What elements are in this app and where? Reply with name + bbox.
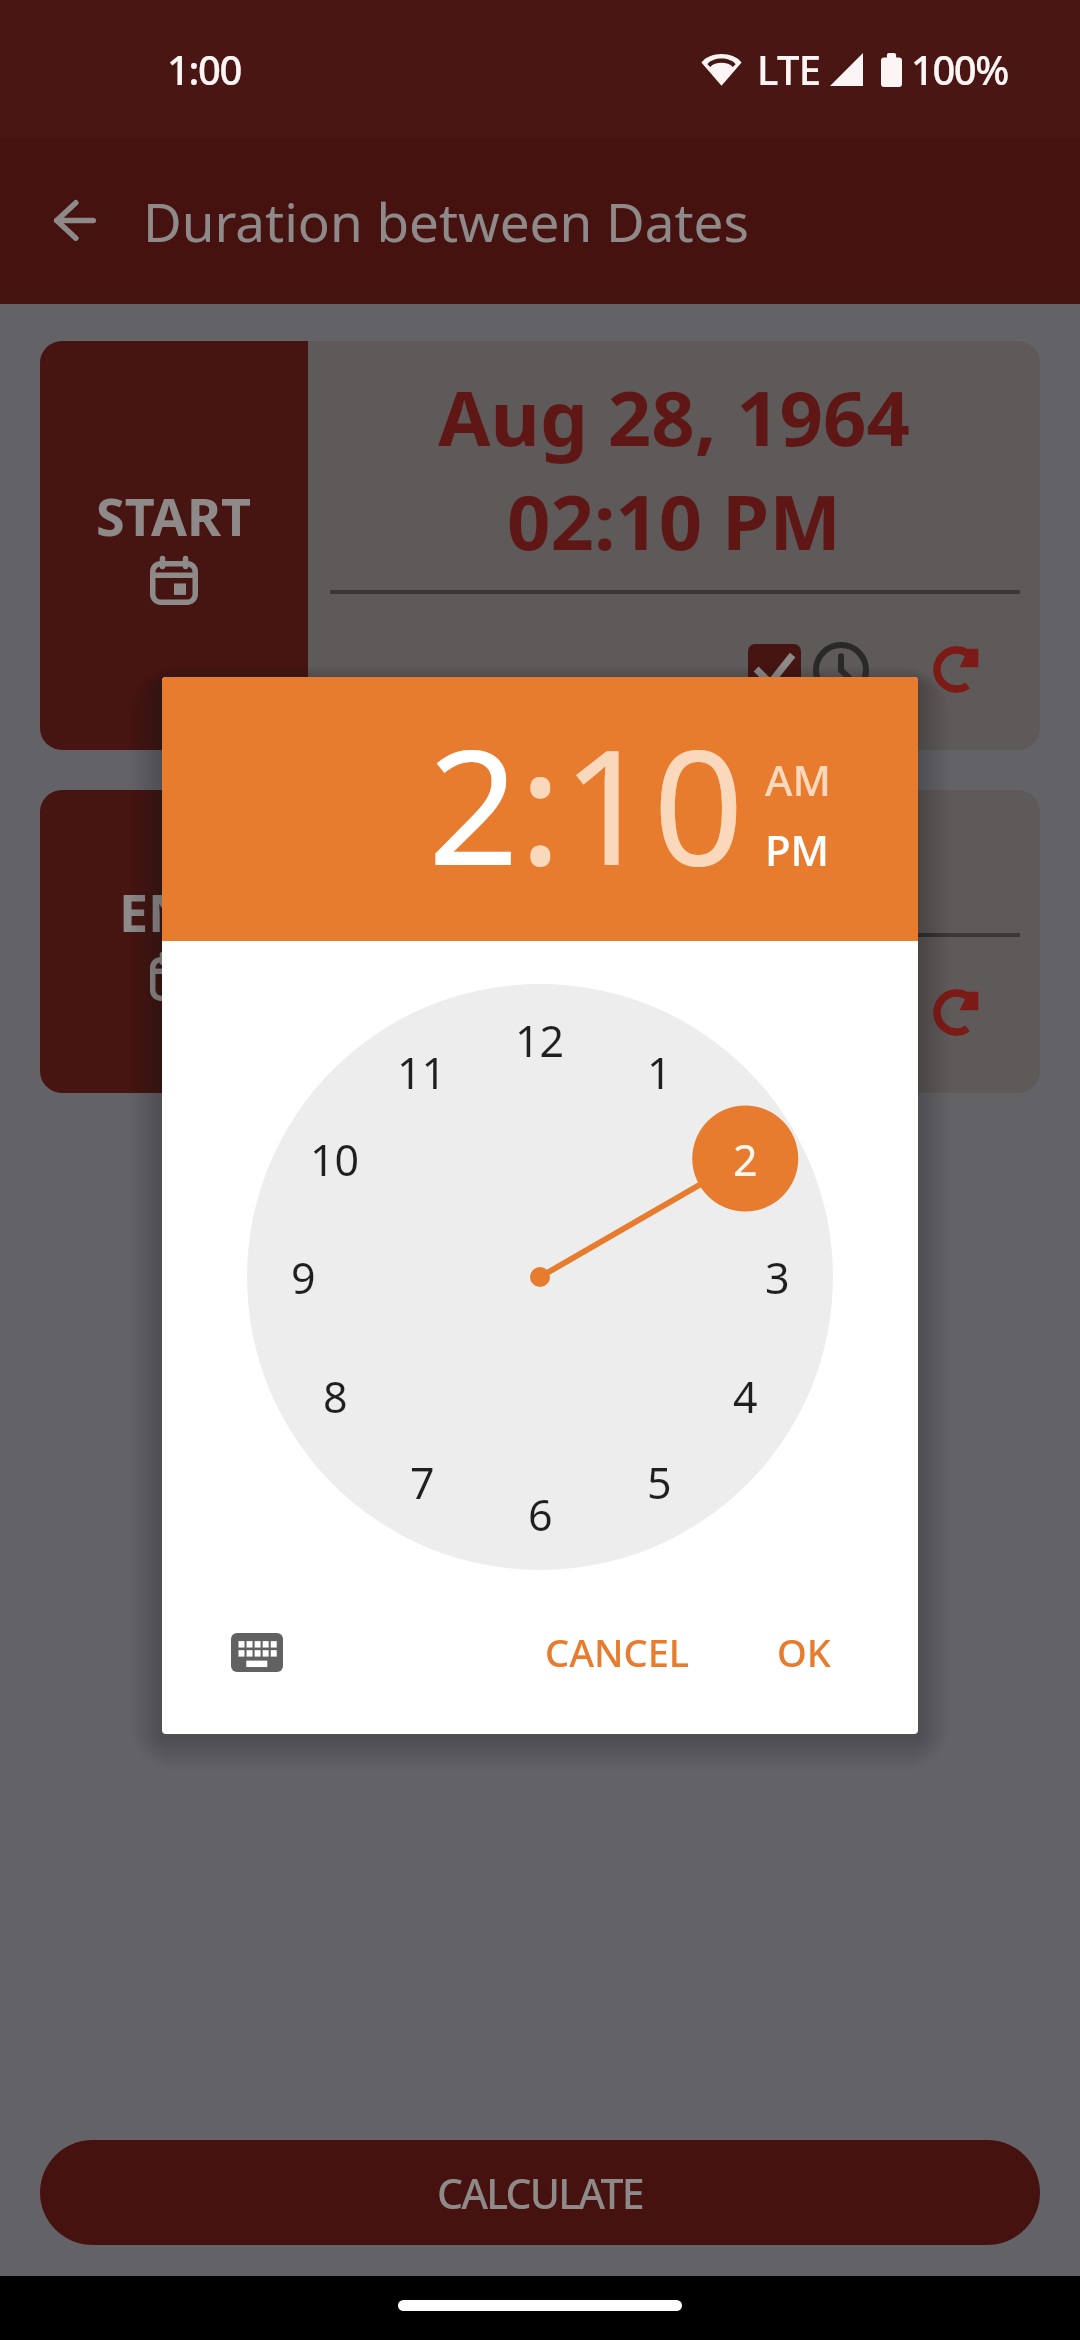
staticText: Aug 28, 1964 [308,365,1040,469]
button[interactable]: Reset [931,982,987,1038]
button[interactable]: 2 [733,1130,758,1189]
staticText: 1:00 [167,42,241,96]
staticText: Duration between Dates [143,185,749,257]
button[interactable]: 10 [310,1130,360,1189]
button[interactable]: END [40,790,308,1093]
button[interactable]: CALCULATE [40,2140,1040,2245]
staticText: PM [765,821,830,878]
button[interactable]: START [40,341,308,750]
button[interactable]: 8 [323,1367,348,1426]
button[interactable]: Time [813,642,869,698]
staticText: END [119,876,229,947]
button[interactable]: Toggle time [748,644,801,697]
staticText: LTE [757,42,821,96]
staticText: START [96,480,252,551]
button[interactable]: 12 [515,1011,565,1070]
staticText: 100% [911,42,1008,96]
button[interactable]: 4 [733,1367,758,1426]
staticText: CALCULATE [437,2165,643,2221]
button[interactable]: 7 [410,1453,435,1512]
staticText: : [519,695,562,912]
button[interactable]: 6 [528,1485,553,1544]
staticText: 02:10 PM [308,918,1040,1022]
button[interactable]: 10 [562,695,744,912]
button[interactable]: Switch to keyboard input [231,1633,283,1672]
button[interactable]: 3 [765,1248,790,1307]
button[interactable]: 1 [647,1043,672,1102]
button[interactable]: 2 [428,695,519,912]
staticText: 02:10 PM [308,469,1040,573]
staticText: CANCEL [545,1626,690,1678]
button[interactable]: Back [27,173,123,269]
button[interactable]: 11 [397,1043,447,1102]
staticText: Aug 28, 1964 [308,814,1040,918]
button[interactable]: OK [753,1610,855,1694]
button[interactable]: AM [765,751,832,808]
staticText: AM [765,751,832,808]
button[interactable]: CANCEL [521,1610,714,1694]
button[interactable]: 9 [291,1248,316,1307]
button[interactable]: 5 [647,1453,672,1512]
button[interactable]: Reset [931,639,987,695]
staticText: OK [777,1626,831,1678]
button[interactable]: PM [765,821,830,878]
